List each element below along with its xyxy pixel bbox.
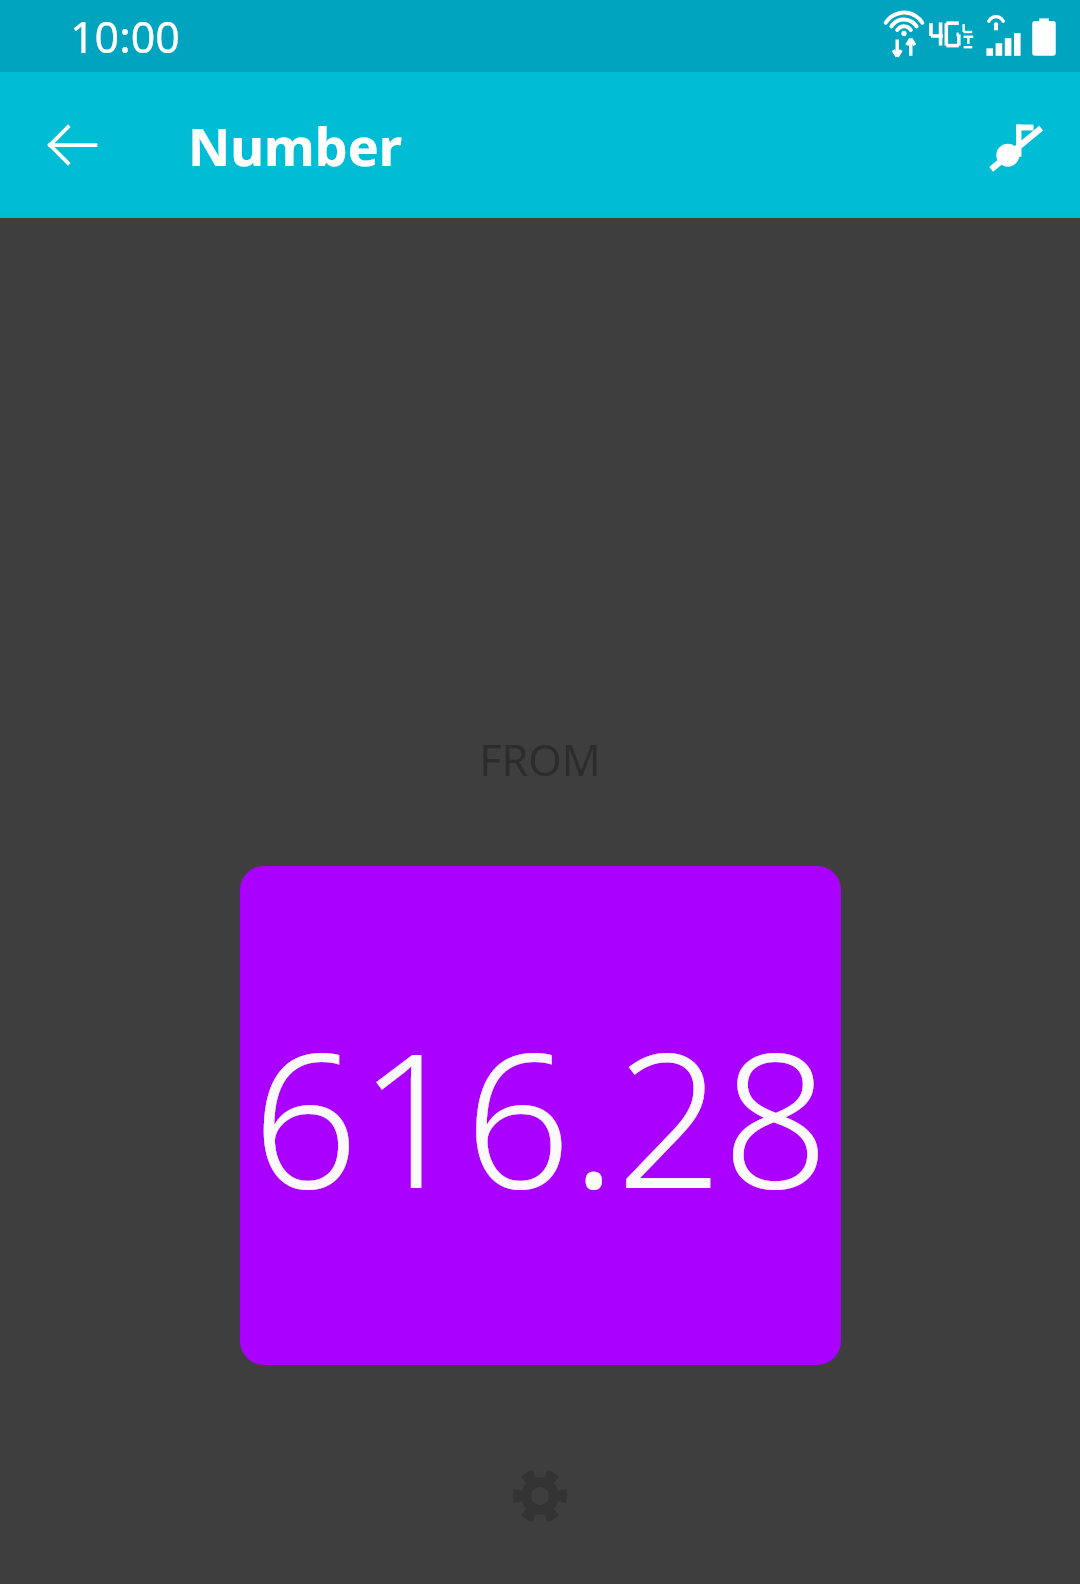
button[interactable]: 616.28 [240, 866, 841, 1365]
button[interactable]: Settings [492, 1448, 588, 1544]
button[interactable]: Back [28, 101, 116, 189]
button[interactable]: Music off [970, 101, 1058, 189]
staticText: 616.28 [252, 989, 829, 1242]
staticText: FROM [479, 730, 601, 789]
staticText: 10:00 [70, 7, 180, 66]
staticText: Number [188, 110, 402, 181]
